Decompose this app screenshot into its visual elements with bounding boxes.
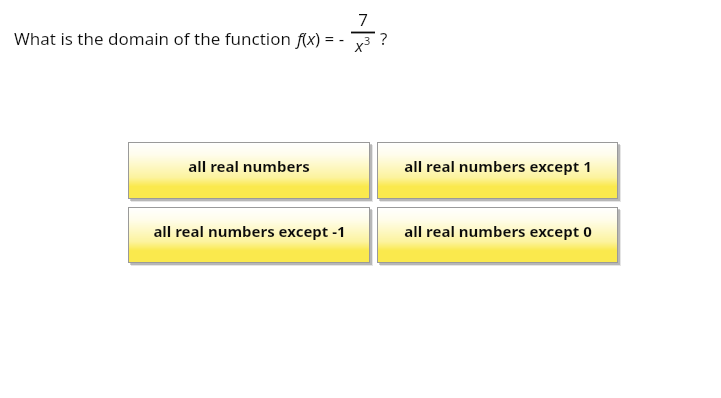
staticText: What is the domain of the function xyxy=(14,27,296,50)
staticText: 3 xyxy=(364,33,371,48)
staticText: 7 xyxy=(355,8,371,30)
staticText: ( xyxy=(302,27,308,50)
staticText: all real numbers except -1 xyxy=(153,221,346,241)
button[interactable]: all real numbers except 0 xyxy=(377,207,618,263)
button[interactable]: all real numbers except 1 xyxy=(377,142,618,199)
staticText: all real numbers xyxy=(188,156,310,176)
staticText: ) = - xyxy=(315,27,345,50)
staticText: all real numbers except 0 xyxy=(404,221,592,241)
staticText: x xyxy=(307,27,316,50)
staticText: f xyxy=(297,27,303,50)
staticText: all real numbers except 1 xyxy=(404,156,592,176)
staticText: ? xyxy=(380,27,388,50)
staticText: x xyxy=(355,34,364,57)
button[interactable]: all real numbers xyxy=(128,142,370,199)
button[interactable]: all real numbers except -1 xyxy=(128,207,370,263)
